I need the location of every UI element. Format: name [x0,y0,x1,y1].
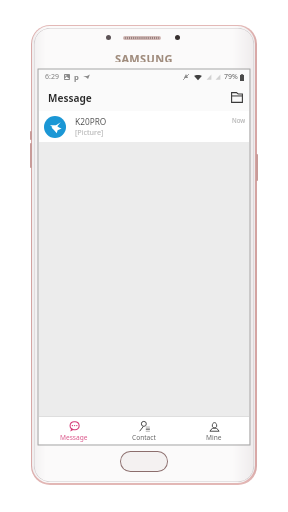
staticText: Message [48,91,92,105]
button[interactable]: K20PRO [39,111,249,142]
staticText: Now [232,116,246,124]
button[interactable]: Message [39,417,109,444]
staticText: р [74,72,79,82]
staticText: Message [60,433,88,442]
staticText: Contact [132,433,156,442]
button[interactable]: Mine [179,417,249,444]
staticText: Mine [206,433,222,442]
staticText: K20PRO [75,116,107,127]
button[interactable]: Contact [109,417,179,444]
staticText: SAMSUNG [115,51,173,62]
staticText: 6:29 [45,72,59,82]
staticText: [Picture] [75,127,104,137]
staticText: 79% [224,72,238,82]
button[interactable]: Folder [227,87,247,107]
